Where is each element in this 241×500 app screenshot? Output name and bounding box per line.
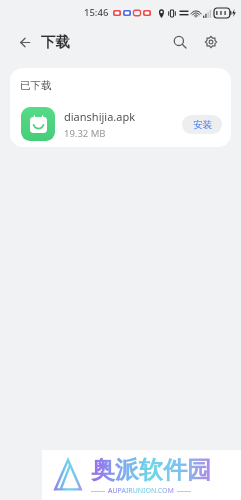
staticText: AUPAIRUNION.COM <box>108 486 174 496</box>
button[interactable]: Back <box>10 29 36 55</box>
staticText: 奥派软件园 <box>91 455 211 485</box>
button[interactable]: Search <box>167 29 193 55</box>
button[interactable]: dianshijia.apk <box>10 105 231 143</box>
staticText: 19.32 MB <box>64 127 106 140</box>
staticText: 下载 <box>41 33 70 51</box>
button[interactable]: Settings <box>198 29 224 55</box>
staticText: dianshijia.apk <box>64 109 136 124</box>
staticText: 15:46 <box>84 6 109 19</box>
staticText: 安装 <box>193 119 212 131</box>
button[interactable]: 安装 <box>182 115 222 134</box>
staticText: 已下载 <box>20 79 52 92</box>
